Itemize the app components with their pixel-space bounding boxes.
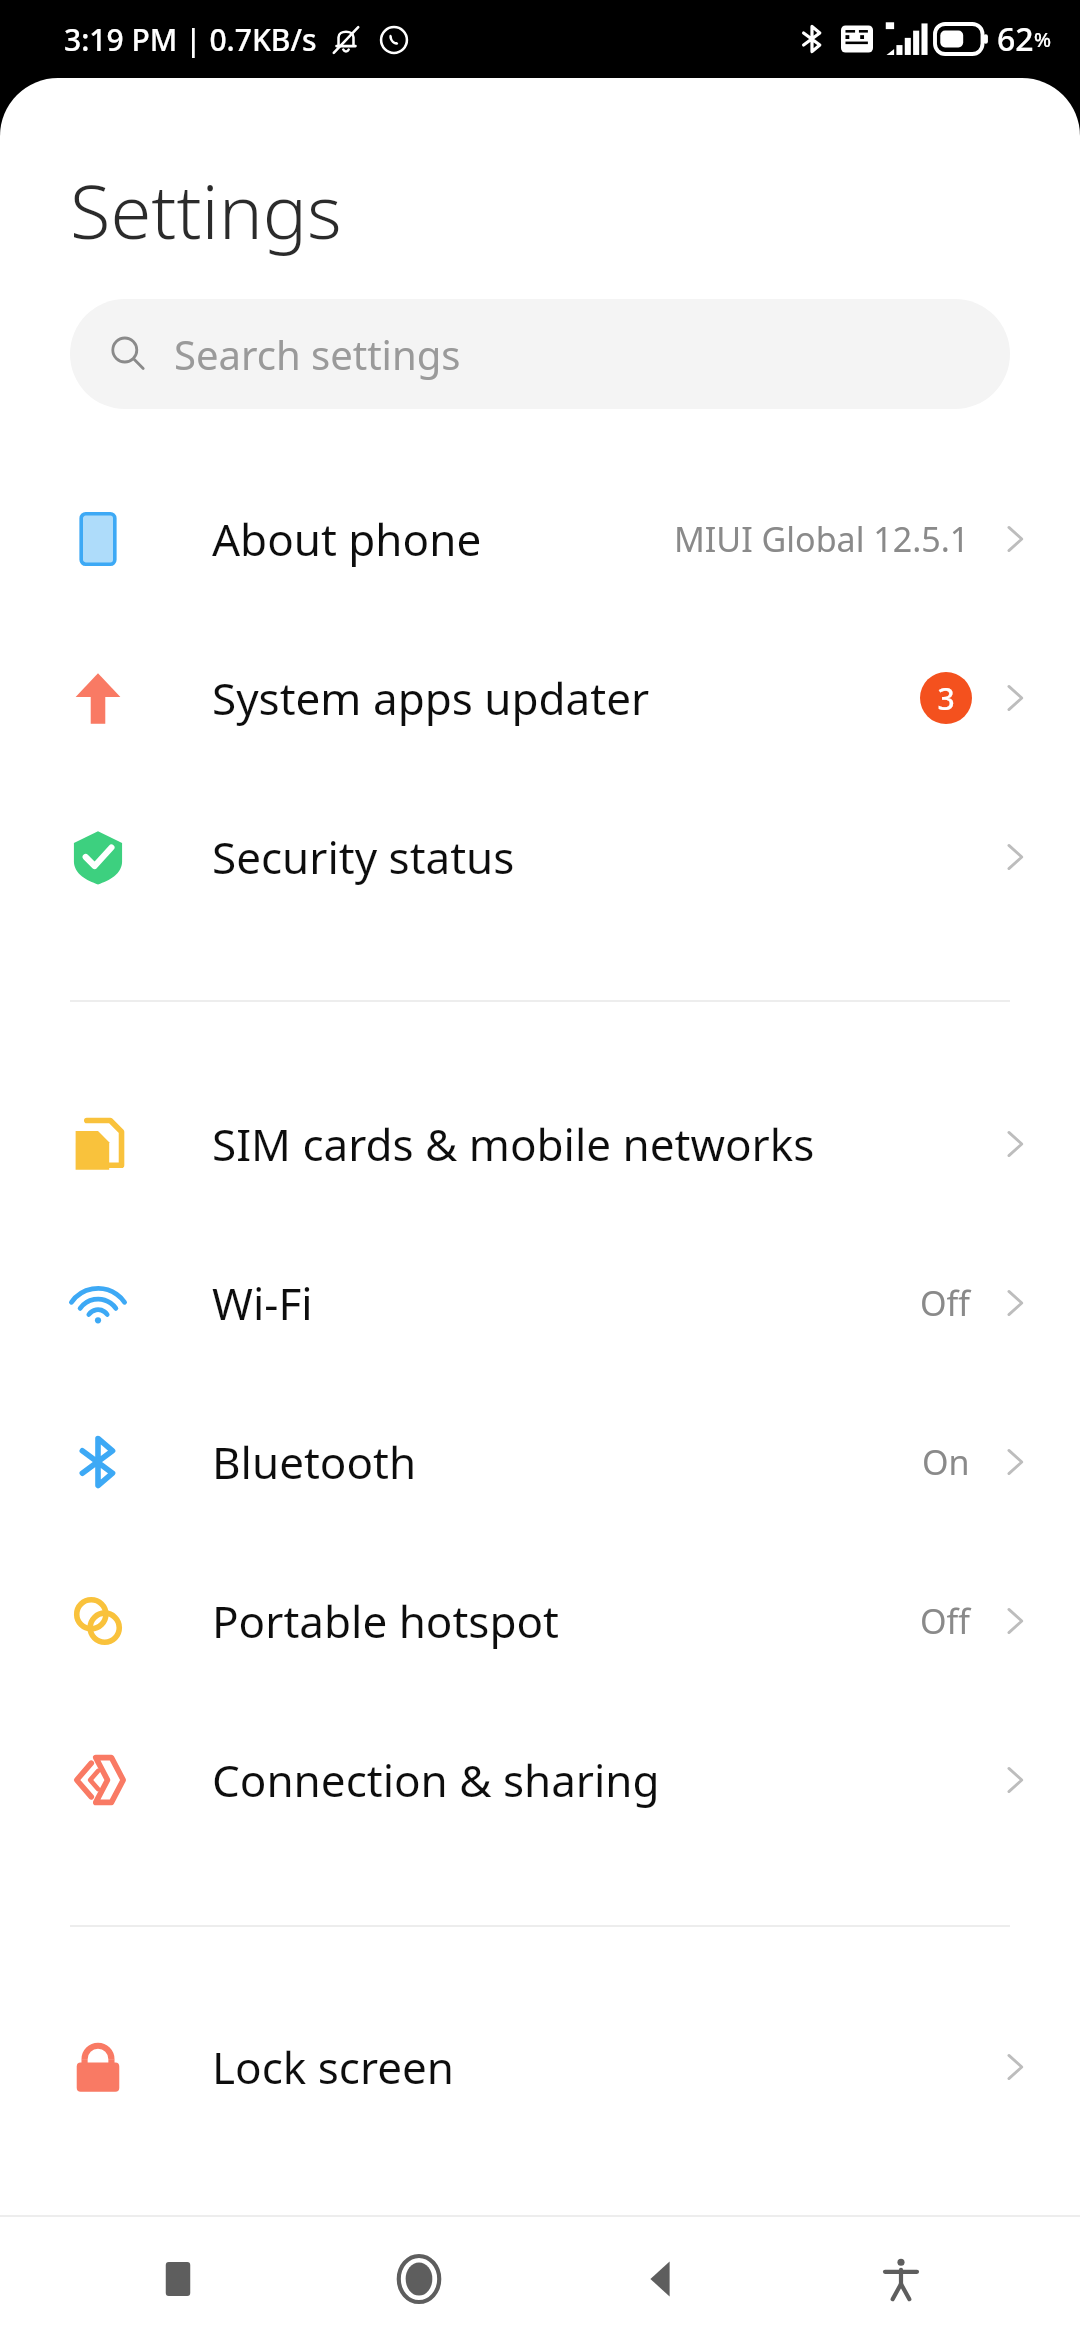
button[interactable]: System apps updater	[0, 618, 1080, 777]
staticText: %	[1034, 26, 1052, 53]
staticText: MIUI Global 12.5.1	[674, 516, 970, 562]
button[interactable]: Lock screen	[0, 1987, 1080, 2146]
button[interactable]: Wi-Fi	[0, 1223, 1080, 1382]
button[interactable]: About phone	[0, 459, 1080, 618]
staticText: 3:19 PM | 0.7KB/s	[64, 19, 317, 60]
staticText: Connection & sharing	[212, 1750, 998, 1810]
staticText: 62	[997, 17, 1034, 61]
staticText: On	[922, 1439, 970, 1485]
staticText: Portable hotspot	[212, 1591, 920, 1651]
staticText: SIM cards & mobile networks	[212, 1114, 998, 1174]
button[interactable]: Accessibility	[853, 2231, 949, 2327]
button[interactable]: Home	[371, 2231, 467, 2327]
button[interactable]: Back	[612, 2231, 708, 2327]
staticText: System apps updater	[212, 668, 920, 728]
button[interactable]: SIM cards & mobile networks	[0, 1064, 1080, 1223]
staticText: About phone	[212, 509, 674, 569]
staticText: Settings	[70, 160, 342, 261]
button[interactable]: Connection & sharing	[0, 1700, 1080, 1859]
button[interactable]: Portable hotspot	[0, 1541, 1080, 1700]
staticText: Off	[920, 1598, 970, 1644]
staticText: Search settings	[174, 327, 461, 381]
staticText: 3	[937, 678, 955, 719]
staticText: Wi-Fi	[212, 1273, 920, 1333]
staticText: Lock screen	[212, 2037, 998, 2097]
button[interactable]: Search settings	[70, 299, 1010, 409]
button[interactable]: Bluetooth	[0, 1382, 1080, 1541]
button[interactable]: Security status	[0, 777, 1080, 936]
button[interactable]: Recents	[130, 2231, 226, 2327]
staticText: Bluetooth	[212, 1432, 922, 1492]
staticText: Off	[920, 1280, 970, 1326]
staticText: Security status	[212, 827, 998, 887]
